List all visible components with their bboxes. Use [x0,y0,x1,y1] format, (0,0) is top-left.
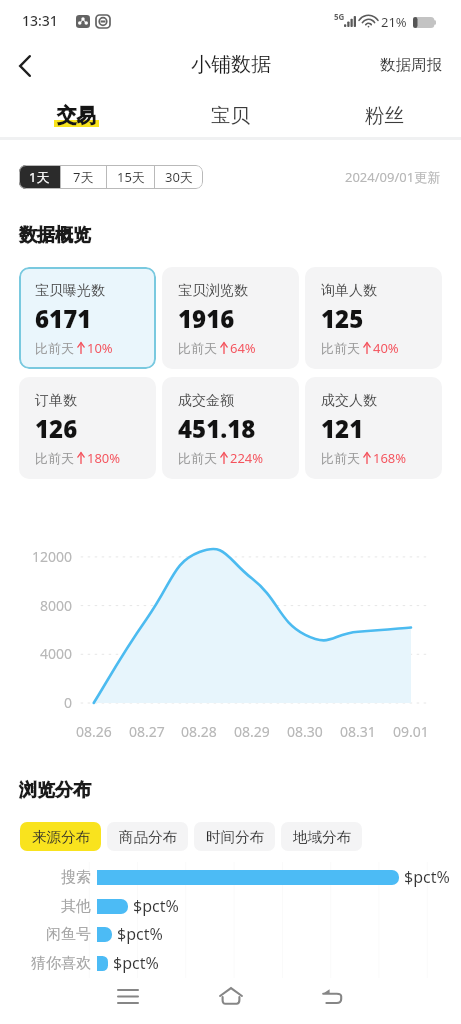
staticText: 21% [381,13,407,31]
staticText: 10% [87,339,113,357]
staticText: 商品分布 [119,828,177,846]
staticText: 08.27 [129,722,165,741]
staticText: 比前天 [35,340,74,356]
button[interactable]: Back [3,43,47,89]
staticText: 比前天 [178,340,217,356]
staticText: 180% [87,449,121,467]
staticText: 比前天 [321,450,360,466]
button[interactable]: 地域分布 [281,822,362,851]
staticText: 浏览分布 [19,779,91,802]
button[interactable]: 成交金额 [162,377,299,479]
staticText: 08.29 [234,722,270,741]
button[interactable]: 30天 [155,165,203,189]
staticText: 交易 [57,103,96,128]
staticText: 猜你喜欢 [31,954,91,973]
staticText: 比前天 [178,450,217,466]
button[interactable]: 粉丝 [307,90,461,137]
staticText: 1916 [178,302,235,335]
button[interactable]: 1天 [19,165,60,189]
staticText: 闲鱼号 [46,925,91,944]
staticText: 来源分布 [32,828,90,846]
button[interactable]: 交易 [0,90,153,137]
button[interactable]: 15天 [107,165,154,189]
staticText: 成交金额 [178,392,234,410]
staticText: $pct% [133,895,179,917]
staticText: 成交人数 [321,392,377,410]
staticText: 451.18 [178,412,256,445]
staticText: 4000 [40,644,73,663]
staticText: 08.28 [181,722,217,741]
staticText: 搜索 [61,868,91,887]
staticText: 2024/09/01更新 [345,168,441,186]
staticText: 订单数 [35,392,77,410]
button[interactable]: 成交人数 [305,377,442,479]
staticText: 5G [334,11,345,22]
staticText: 08.26 [76,722,112,741]
staticText: 粉丝 [365,103,404,128]
button[interactable]: 7天 [61,165,106,189]
staticText: 30天 [165,168,193,186]
staticText: $pct% [117,923,163,945]
staticText: 126 [35,412,78,445]
staticText: 0 [64,693,73,712]
staticText: 08.30 [287,722,323,741]
staticText: 168% [373,449,407,467]
staticText: 比前天 [321,340,360,356]
staticText: 1天 [29,168,50,186]
staticText: 比前天 [35,450,74,466]
button[interactable]: Recents [106,974,150,1018]
staticText: 其他 [61,897,91,916]
staticText: 12000 [32,547,73,566]
staticText: 数据周报 [380,55,442,75]
button[interactable]: 宝贝 [153,90,307,137]
staticText: 7天 [73,168,94,186]
staticText: 地域分布 [293,828,351,846]
staticText: 08.31 [340,722,376,741]
button[interactable]: 宝贝曝光数 [19,267,156,369]
staticText: 224% [230,449,264,467]
button[interactable]: 询单人数 [305,267,442,369]
staticText: 15天 [117,168,145,186]
staticText: 6171 [35,302,92,335]
staticText: 64% [230,339,256,357]
staticText: 宝贝浏览数 [178,282,248,300]
staticText: $pct% [404,866,450,888]
staticText: 宝贝曝光数 [35,282,105,300]
button[interactable]: 时间分布 [194,822,275,851]
button[interactable]: 来源分布 [20,822,101,851]
staticText: 13:31 [22,11,58,30]
staticText: 小铺数据 [191,52,271,77]
button[interactable]: 商品分布 [107,822,188,851]
button[interactable]: 订单数 [19,377,156,479]
staticText: 数据概览 [19,224,91,247]
staticText: 宝贝 [211,103,250,128]
staticText: $pct% [113,952,159,974]
staticText: 时间分布 [206,828,264,846]
button[interactable]: Back [310,974,354,1018]
staticText: 121 [321,412,364,445]
staticText: 询单人数 [321,282,377,300]
button[interactable]: Home [209,974,253,1018]
staticText: 125 [321,302,364,335]
button[interactable]: 数据周报 [366,44,461,86]
staticText: 09.01 [393,722,429,741]
button[interactable]: 宝贝浏览数 [162,267,299,369]
staticText: 8000 [40,596,73,615]
staticText: 40% [373,339,399,357]
